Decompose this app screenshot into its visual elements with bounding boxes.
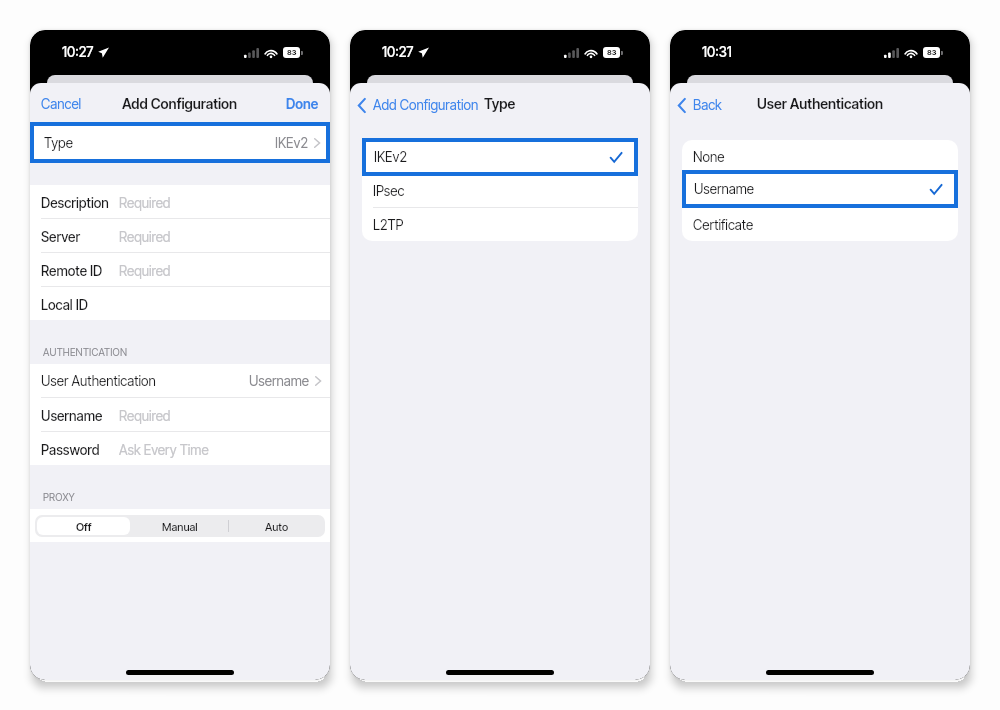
staticText: Auto — [265, 520, 289, 533]
button[interactable]: IKEv2 — [366, 142, 634, 172]
staticText: Add Configuration — [373, 97, 479, 113]
staticText: IKEv2 — [373, 149, 406, 165]
staticText: Add Configuration — [122, 95, 238, 112]
staticText: Type — [484, 95, 516, 112]
other: Selected — [931, 185, 943, 196]
other: Wi-Fi — [904, 48, 918, 58]
staticText: User Authentication — [757, 95, 884, 112]
other: Battery 83 percent — [283, 47, 302, 58]
other: Wi-Fi — [264, 48, 278, 58]
staticText: Server — [41, 229, 81, 245]
staticText: Add Configuration — [369, 96, 475, 112]
staticText: Done — [286, 96, 319, 112]
other: Cellular signal — [884, 48, 899, 58]
button[interactable]: Description — [30, 185, 330, 218]
staticText: IPsec — [373, 183, 405, 199]
other: Selected — [611, 151, 623, 162]
staticText: Back — [693, 97, 722, 113]
staticText: Cancel — [41, 96, 82, 112]
staticText: 83 — [287, 48, 297, 57]
staticText: AUTHENTICATION — [43, 346, 128, 358]
button[interactable]: Type — [34, 126, 326, 159]
button[interactable]: Password — [30, 432, 330, 465]
other: Battery 83 percent — [603, 47, 622, 58]
other: Location in use — [418, 47, 429, 58]
staticText: Password — [41, 442, 100, 458]
button[interactable]: Username — [686, 174, 954, 204]
staticText: 83 — [927, 48, 937, 57]
button[interactable]: Off — [37, 517, 130, 535]
staticText: IKEv2 — [275, 135, 308, 151]
button[interactable]: User Authentication — [30, 364, 330, 397]
staticText: Username — [249, 373, 309, 389]
button[interactable]: Server — [30, 219, 330, 252]
other: Battery 83 percent — [923, 47, 942, 58]
staticText: Local ID — [41, 297, 88, 313]
other: Location in use — [98, 47, 109, 58]
button[interactable]: None — [682, 140, 958, 173]
staticText: IKEv2 — [374, 149, 407, 165]
staticText: Description — [41, 195, 109, 211]
button[interactable]: Certificate — [682, 208, 958, 241]
button[interactable]: Remote ID — [30, 253, 330, 286]
staticText: User Authentication — [41, 373, 156, 389]
staticText: None — [693, 149, 725, 165]
staticText: Username — [41, 408, 103, 424]
button[interactable]: Cancel — [38, 93, 85, 115]
button[interactable]: Username — [682, 174, 958, 207]
button[interactable]: Manual — [132, 515, 228, 537]
other: Wi-Fi — [584, 48, 598, 58]
staticText: Required — [119, 263, 171, 279]
staticText: Certificate — [693, 217, 754, 233]
staticText: Required — [119, 408, 171, 424]
staticText: 83 — [607, 48, 617, 57]
button[interactable]: Username — [30, 398, 330, 431]
other: Cellular signal — [244, 48, 259, 58]
staticText: 10:31 — [702, 44, 732, 60]
button[interactable]: Back — [676, 94, 724, 116]
staticText: Type — [44, 135, 73, 151]
other: Selected — [930, 184, 942, 195]
staticText: Required — [119, 229, 171, 245]
staticText: PROXY — [43, 491, 75, 503]
staticText: 10:27 — [62, 44, 94, 60]
button[interactable]: L2TP — [362, 208, 638, 241]
staticText: 10:27 — [382, 44, 414, 60]
staticText: Manual — [162, 520, 198, 533]
staticText: Username — [693, 183, 753, 199]
staticText: Remote ID — [41, 263, 103, 279]
staticText: Ask Every Time — [119, 442, 209, 458]
staticText: Username — [694, 181, 754, 197]
other: Cellular signal — [564, 48, 579, 58]
button[interactable]: IKEv2 — [362, 140, 638, 173]
other: Selected — [610, 152, 622, 163]
button[interactable]: Add Configuration — [356, 94, 481, 116]
button[interactable]: Done — [283, 93, 322, 115]
staticText: Required — [119, 195, 171, 211]
staticText: Off — [76, 520, 92, 533]
button[interactable]: Auto — [229, 515, 325, 537]
button[interactable]: Local ID — [30, 287, 330, 320]
staticText: L2TP — [373, 217, 404, 233]
button[interactable]: IPsec — [362, 174, 638, 207]
